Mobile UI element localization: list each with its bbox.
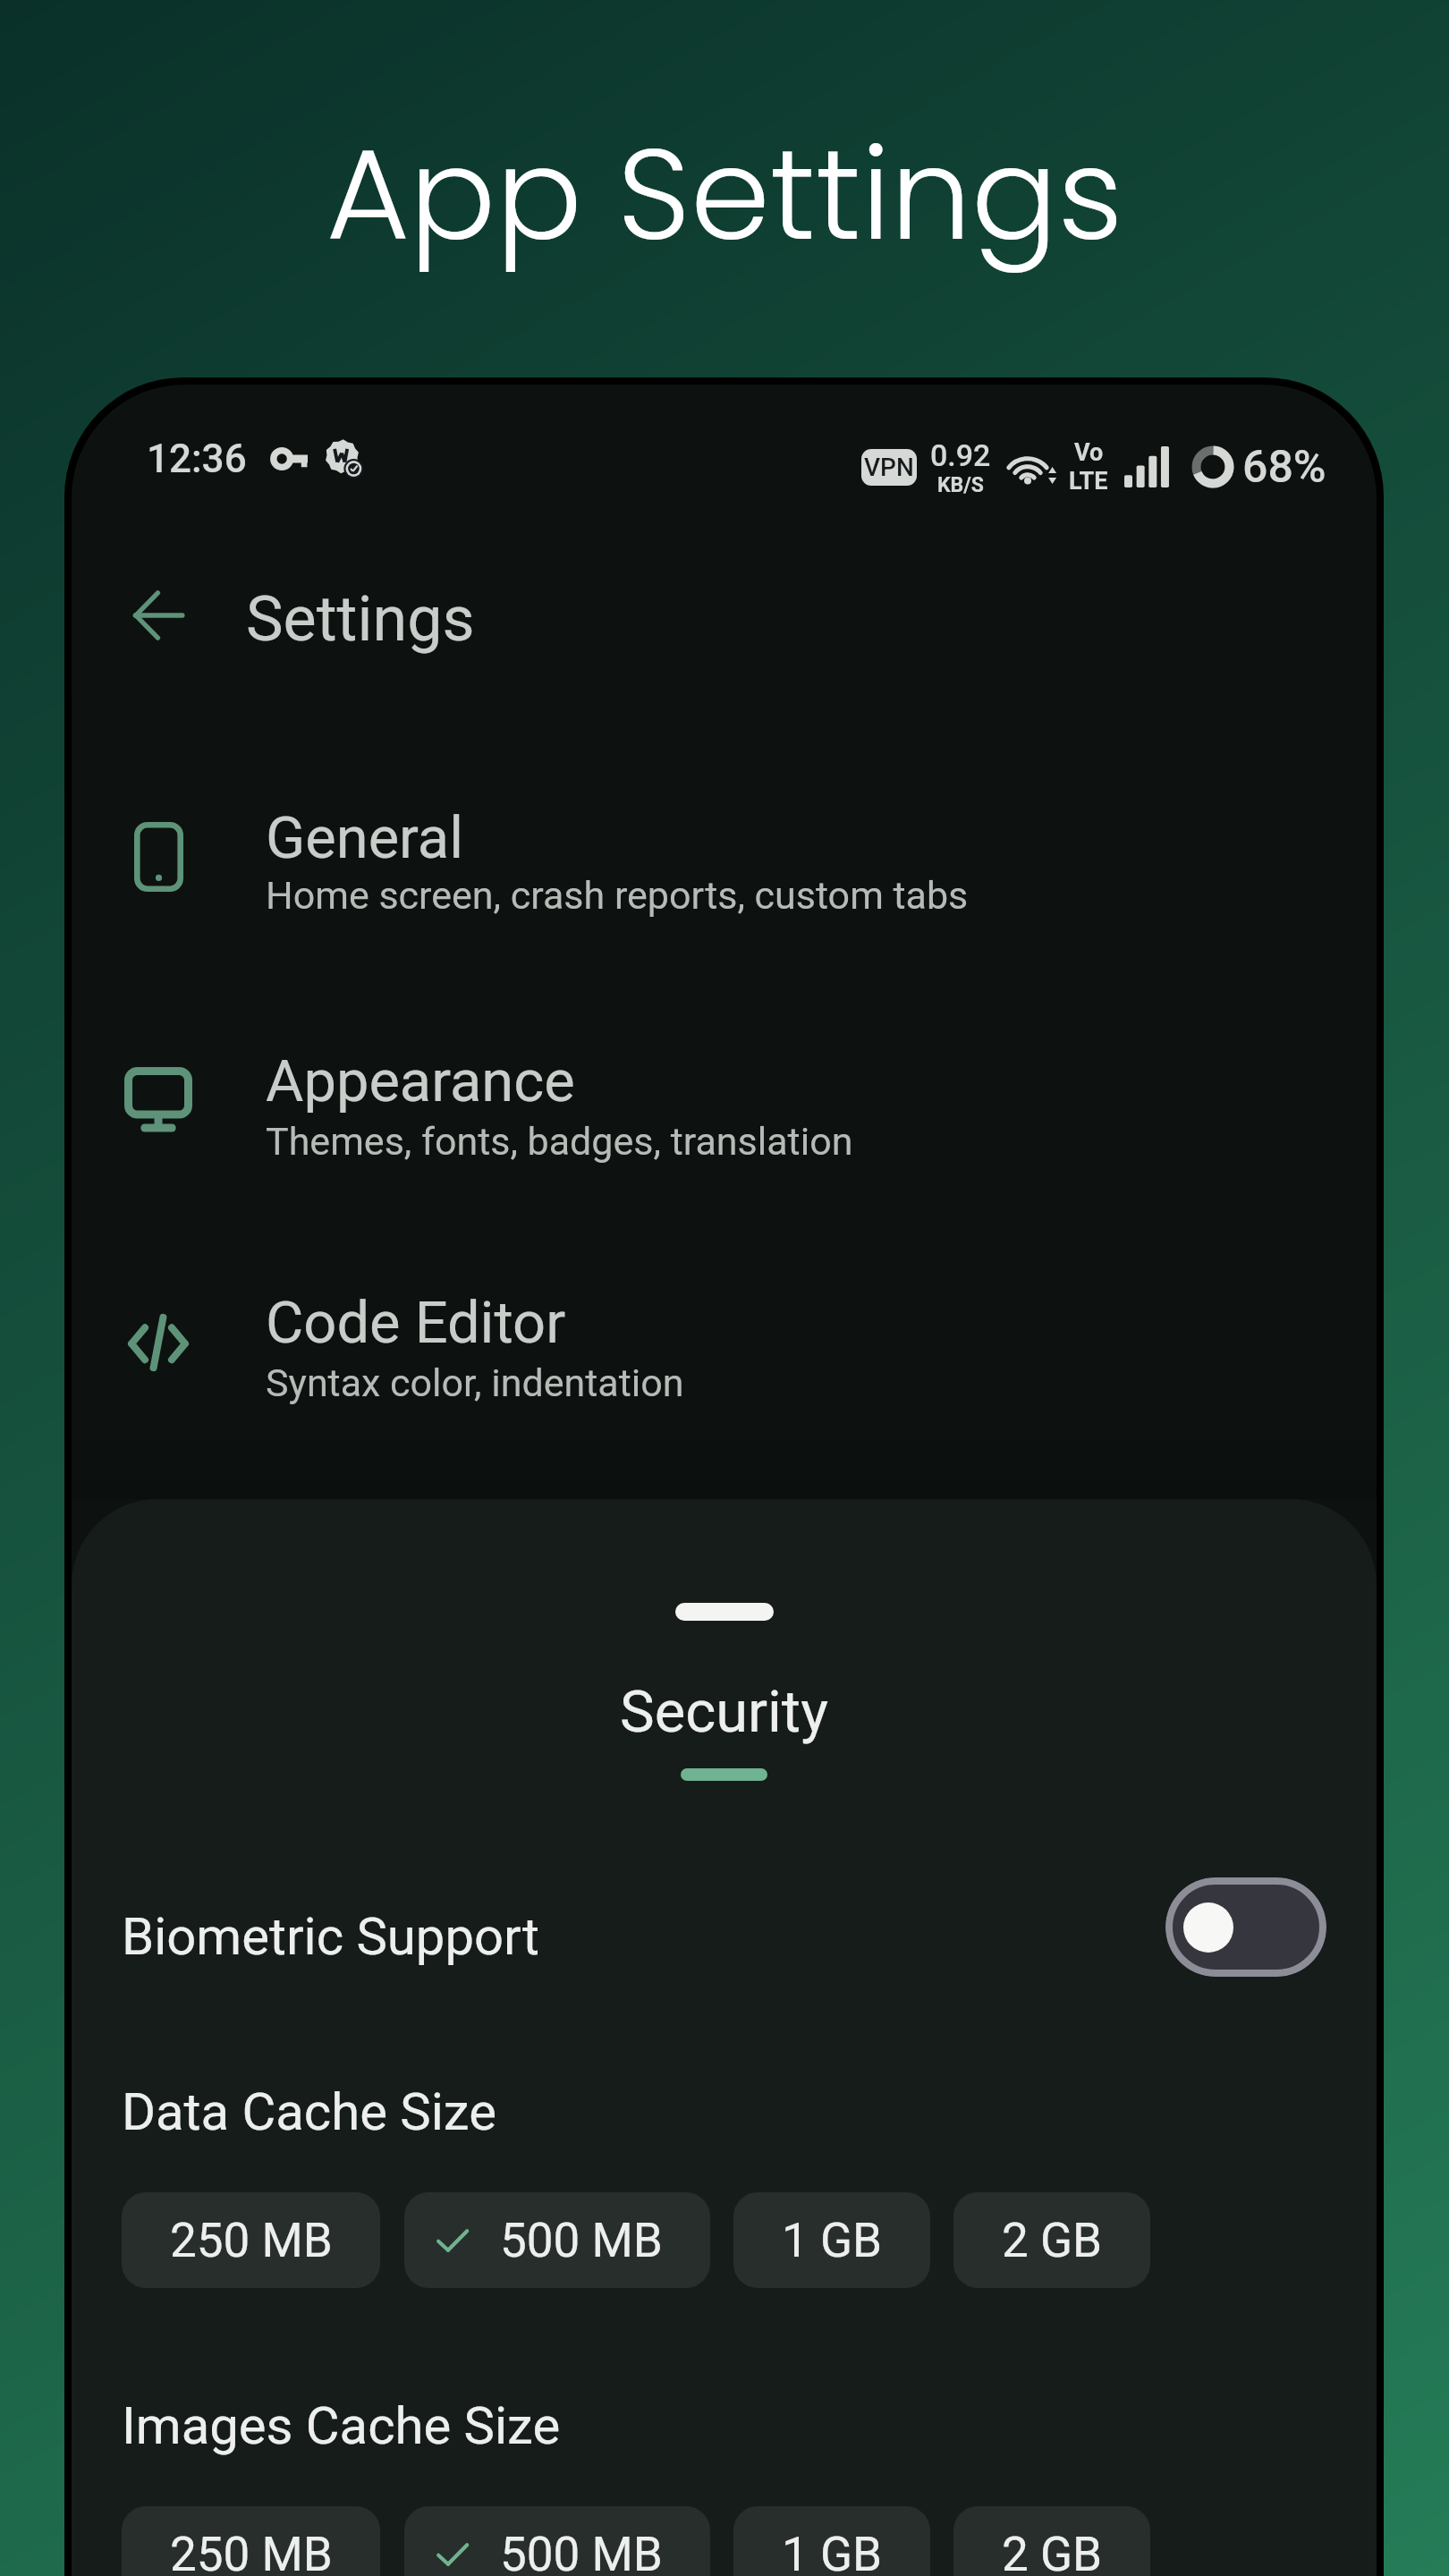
staticText: 2 GB: [1002, 2527, 1103, 2576]
button[interactable]: 2 GB: [953, 2506, 1150, 2576]
staticText: Biometric Support: [122, 1906, 540, 1967]
staticText: Syntax color, indentation: [266, 1360, 684, 1405]
staticText: Settings: [246, 582, 475, 656]
button[interactable]: 250 MB: [122, 2506, 380, 2576]
staticText: Data Cache Size: [122, 2081, 496, 2142]
staticText: Themes, fonts, badges, translation: [266, 1119, 853, 1164]
button[interactable]: 500 MB: [404, 2192, 710, 2288]
staticText: VPN: [864, 453, 914, 482]
staticText: 1 GB: [782, 2527, 883, 2576]
staticText: 250 MB: [170, 2527, 333, 2576]
button[interactable]: Back: [106, 563, 210, 667]
button[interactable]: 500 MB: [404, 2506, 710, 2576]
button[interactable]: 1 GB: [733, 2506, 930, 2576]
staticText: 250 MB: [170, 2213, 333, 2268]
staticText: 500 MB: [500, 2527, 663, 2576]
staticText: Appearance: [266, 1047, 575, 1115]
staticText: App Settings: [0, 105, 1449, 284]
staticText: Vo: [1074, 438, 1104, 467]
staticText: 12:36: [147, 436, 247, 482]
button[interactable]: 250 MB: [122, 2192, 380, 2288]
staticText: KB/S: [937, 473, 984, 497]
staticText: General: [266, 804, 464, 872]
staticText: 500 MB: [500, 2213, 663, 2268]
button[interactable]: 1 GB: [733, 2192, 930, 2288]
button[interactable]: 2 GB: [953, 2192, 1150, 2288]
staticText: 0.92: [930, 437, 991, 473]
button[interactable]: Code Editor: [72, 1257, 1377, 1428]
button[interactable]: Biometric Support toggle: [1165, 1877, 1326, 1977]
button[interactable]: Appearance: [72, 1013, 1377, 1185]
staticText: 68%: [1242, 441, 1326, 494]
staticText: Code Editor: [266, 1289, 566, 1357]
staticText: LTE: [1069, 467, 1108, 496]
staticText: Images Cache Size: [122, 2395, 561, 2456]
staticText: 1 GB: [782, 2213, 883, 2268]
staticText: Home screen, crash reports, custom tabs: [266, 873, 969, 918]
staticText: Security: [72, 1678, 1377, 1746]
button[interactable]: General: [72, 771, 1377, 943]
staticText: 2 GB: [1002, 2213, 1103, 2268]
button[interactable]: Biometric Support: [72, 1877, 1377, 1978]
